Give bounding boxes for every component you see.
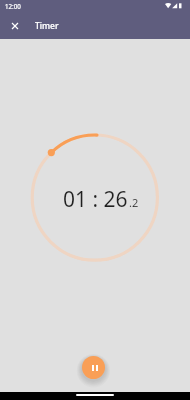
staticText: Timer (35, 20, 59, 32)
button[interactable]: Close (2, 14, 26, 39)
staticText: .2 (129, 195, 139, 210)
staticText: 01 : 26 (63, 185, 128, 214)
button[interactable]: Pause (82, 356, 105, 379)
staticText: 12:00 (5, 2, 21, 10)
